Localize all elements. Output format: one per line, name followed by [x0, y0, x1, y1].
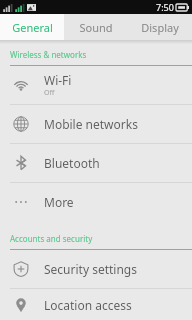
button[interactable]: Display: [128, 14, 192, 40]
other: Security settings: [13, 261, 29, 277]
button[interactable]: Mobile networks: [0, 105, 192, 143]
staticText: Bluetooth: [44, 155, 100, 171]
staticText: 7:50: [156, 1, 174, 13]
staticText: Security settings: [44, 261, 137, 277]
staticText: Wireless & networks: [10, 49, 87, 60]
button[interactable]: Bluetooth: [0, 144, 192, 182]
staticText: Sound: [79, 20, 113, 35]
other: Wi-Fi: [13, 77, 29, 93]
other: More: [13, 194, 29, 210]
other: Mobile networks: [13, 116, 29, 132]
button[interactable]: Wi-Fi: [0, 66, 192, 104]
staticText: Off: [44, 88, 55, 98]
staticText: Display: [141, 20, 179, 35]
staticText: Accounts and security: [10, 233, 93, 244]
staticText: More: [44, 194, 74, 210]
button[interactable]: More: [0, 183, 192, 221]
staticText: Mobile networks: [44, 116, 138, 132]
button[interactable]: Security settings: [0, 250, 192, 288]
button[interactable]: Sound: [64, 14, 128, 40]
other: Bluetooth: [13, 155, 29, 171]
button[interactable]: General: [0, 14, 64, 40]
staticText: Wi-Fi: [44, 72, 72, 88]
other: Location access: [13, 297, 29, 313]
button[interactable]: Location access: [0, 289, 192, 320]
staticText: Location access: [44, 297, 132, 313]
staticText: General: [12, 20, 53, 35]
